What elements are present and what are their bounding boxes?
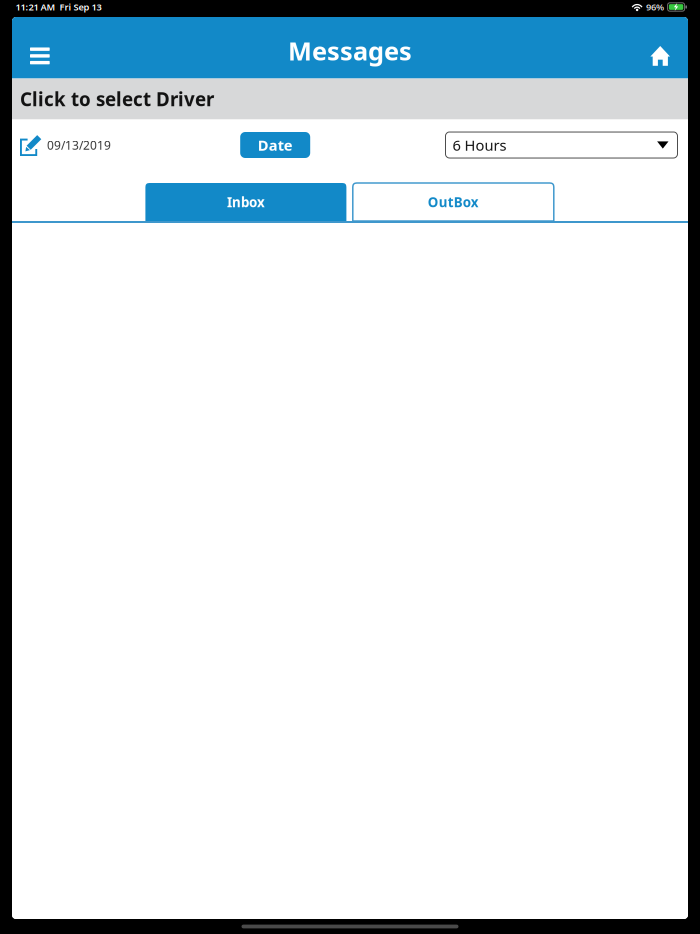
button[interactable]: Click to select Driver [12, 78, 688, 119]
staticText: OutBox [428, 193, 479, 211]
button[interactable]: Menu [12, 33, 66, 78]
staticText: 11:21 AM [15, 1, 55, 13]
button[interactable]: OutBox [353, 183, 554, 221]
staticText: 6 Hours [452, 135, 506, 155]
staticText: Click to select Driver [20, 87, 214, 111]
staticText: 96% [646, 1, 664, 13]
button[interactable]: 09/13/2019 [20, 128, 123, 162]
staticText: Inbox [227, 193, 265, 211]
staticText: 09/13/2019 [47, 137, 111, 153]
button[interactable]: Date [240, 132, 310, 158]
button[interactable]: Inbox [145, 183, 346, 221]
staticText: Messages [288, 34, 412, 67]
staticText: Fri Sep 13 [59, 1, 101, 13]
staticText: Date [258, 135, 293, 155]
button[interactable]: Home [634, 33, 688, 78]
button[interactable]: 6 Hours [445, 132, 677, 158]
